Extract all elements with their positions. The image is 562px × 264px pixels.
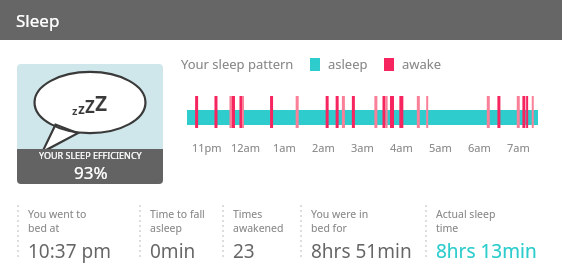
button[interactable]: Time to fall xyxy=(150,207,222,263)
button[interactable]: Sleep pattern chart xyxy=(187,96,538,136)
staticText: awake xyxy=(402,55,442,73)
button[interactable]: You went to xyxy=(28,207,139,263)
staticText: awakened xyxy=(233,221,284,235)
staticText: 10:37 pm xyxy=(28,238,111,263)
staticText: Z xyxy=(95,89,108,118)
staticText: bed at xyxy=(28,221,60,235)
staticText: You went to xyxy=(28,207,87,221)
staticText: 11pm xyxy=(192,140,222,155)
button[interactable]: You were in xyxy=(311,207,425,263)
staticText: Times xyxy=(233,207,263,221)
staticText: Time to fall xyxy=(150,207,205,221)
staticText: 0min xyxy=(150,238,196,263)
staticText: 7am xyxy=(507,140,530,155)
staticText: 8hrs 13min xyxy=(436,238,537,263)
staticText: 4am xyxy=(390,140,413,155)
staticText: asleep xyxy=(150,221,182,235)
staticText: Sleep xyxy=(16,9,60,32)
staticText: Your sleep pattern xyxy=(181,55,294,73)
staticText: asleep xyxy=(328,55,368,73)
staticText: time xyxy=(436,221,459,235)
staticText: Actual sleep xyxy=(436,207,496,221)
staticText: 2am xyxy=(312,140,335,155)
staticText: 12am xyxy=(231,140,261,155)
staticText: z xyxy=(72,103,78,118)
staticText: 3am xyxy=(351,140,374,155)
staticText: z xyxy=(78,99,85,118)
staticText: 5am xyxy=(429,140,452,155)
staticText: Z xyxy=(85,95,95,118)
staticText: 6am xyxy=(468,140,491,155)
staticText: bed for xyxy=(311,221,347,235)
button[interactable]: z xyxy=(17,64,163,184)
staticText: You were in xyxy=(311,207,369,221)
staticText: 23 xyxy=(233,238,255,263)
button[interactable]: Times xyxy=(233,207,300,263)
staticText: YOUR SLEEP EFFICIENCY xyxy=(39,149,142,161)
staticText: 1am xyxy=(273,140,296,155)
button[interactable]: Sleep xyxy=(0,0,562,40)
staticText: 93% xyxy=(74,161,108,184)
button[interactable]: Actual sleep xyxy=(436,207,550,263)
staticText: 8hrs 51min xyxy=(311,238,412,263)
